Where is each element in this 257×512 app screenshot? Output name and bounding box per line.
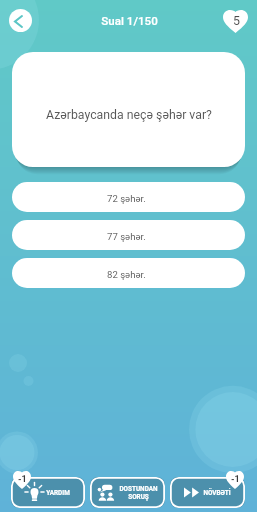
staticText: NÖVBƏTİ [203, 489, 231, 497]
button[interactable]: DOSTUNDAN SORUŞ [90, 477, 165, 508]
staticText: 72 şəhər. [107, 193, 146, 204]
button[interactable]: NÖVBƏTİ [170, 477, 245, 508]
button[interactable]: 77 şəhər. [12, 220, 245, 250]
staticText: Azərbaycanda neçə şəhər var? [46, 108, 212, 122]
button[interactable]: 82 şəhər. [12, 258, 245, 288]
staticText: 82 şəhər. [107, 269, 146, 280]
staticText: YARDIM [46, 489, 70, 497]
button[interactable]: 72 şəhər. [12, 182, 245, 212]
staticText: -1 [231, 474, 240, 485]
button[interactable]: Lives remaining: 5 [223, 10, 248, 33]
staticText: -1 [18, 474, 27, 485]
staticText: 77 şəhər. [107, 231, 146, 242]
staticText: DOSTUNDAN SORUŞ [119, 485, 158, 501]
button[interactable]: Back [9, 9, 32, 32]
staticText: 5 [233, 13, 240, 28]
button[interactable]: YARDIM [11, 477, 85, 508]
staticText: Sual 1/150 [1, 14, 257, 28]
